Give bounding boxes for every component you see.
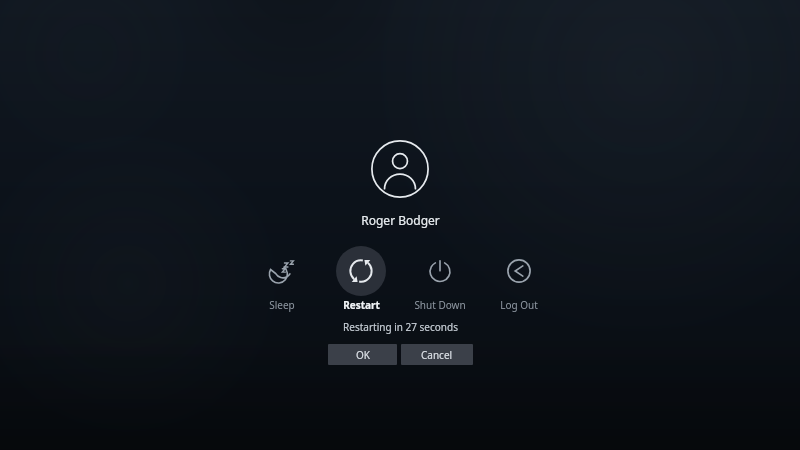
staticText: Restart bbox=[343, 298, 380, 312]
button[interactable]: User avatar bbox=[371, 140, 429, 198]
staticText: Log Out bbox=[500, 298, 538, 312]
button[interactable]: OK bbox=[328, 344, 397, 365]
staticText: OK bbox=[356, 348, 370, 362]
button[interactable]: Sleep bbox=[253, 246, 311, 312]
staticText: Shut Down bbox=[414, 298, 466, 312]
staticText: Sleep bbox=[269, 298, 295, 312]
button[interactable]: Log Out bbox=[490, 246, 548, 312]
staticText: Roger Bodger bbox=[361, 212, 440, 228]
button[interactable]: Restart bbox=[332, 246, 390, 312]
staticText: Cancel bbox=[421, 348, 453, 362]
staticText: Restarting in 27 seconds bbox=[343, 320, 458, 334]
button[interactable]: Shut Down bbox=[411, 246, 469, 312]
button[interactable]: Cancel bbox=[401, 344, 473, 365]
